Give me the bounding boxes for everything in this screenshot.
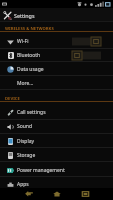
- staticText: Settings: [14, 12, 35, 19]
- button[interactable]: Switch off: [72, 51, 101, 60]
- button[interactable]: Switch on: [72, 37, 101, 46]
- staticText: More...: [17, 80, 34, 87]
- staticText: Display: [17, 138, 35, 145]
- button[interactable]: Call settings: [0, 105, 113, 120]
- button[interactable]: Sound: [0, 119, 113, 134]
- button[interactable]: More...: [0, 76, 113, 91]
- button[interactable]: Display: [0, 134, 113, 149]
- staticText: Bluetooth: [17, 52, 41, 59]
- staticText: Apps: [17, 181, 29, 188]
- button[interactable]: Bluetooth: [0, 48, 113, 63]
- button[interactable]: Power management: [0, 163, 113, 178]
- button[interactable]: Recent apps: [73, 188, 97, 200]
- button[interactable]: Home: [45, 188, 69, 200]
- button[interactable]: Storage: [0, 148, 113, 163]
- staticText: DEVICE: [5, 96, 20, 102]
- staticText: Power management: [17, 167, 65, 174]
- staticText: Wi-Fi: [17, 38, 29, 45]
- button[interactable]: Back: [17, 188, 41, 200]
- button[interactable]: Data usage: [0, 62, 113, 77]
- staticText: Storage: [17, 152, 36, 159]
- button[interactable]: Apps: [0, 177, 113, 192]
- staticText: Sound: [17, 123, 33, 130]
- staticText: WIRELESS & NETWORKS: [5, 26, 54, 32]
- staticText: Call settings: [17, 109, 46, 116]
- staticText: Data usage: [17, 66, 44, 73]
- button[interactable]: Wi-Fi: [0, 34, 113, 49]
